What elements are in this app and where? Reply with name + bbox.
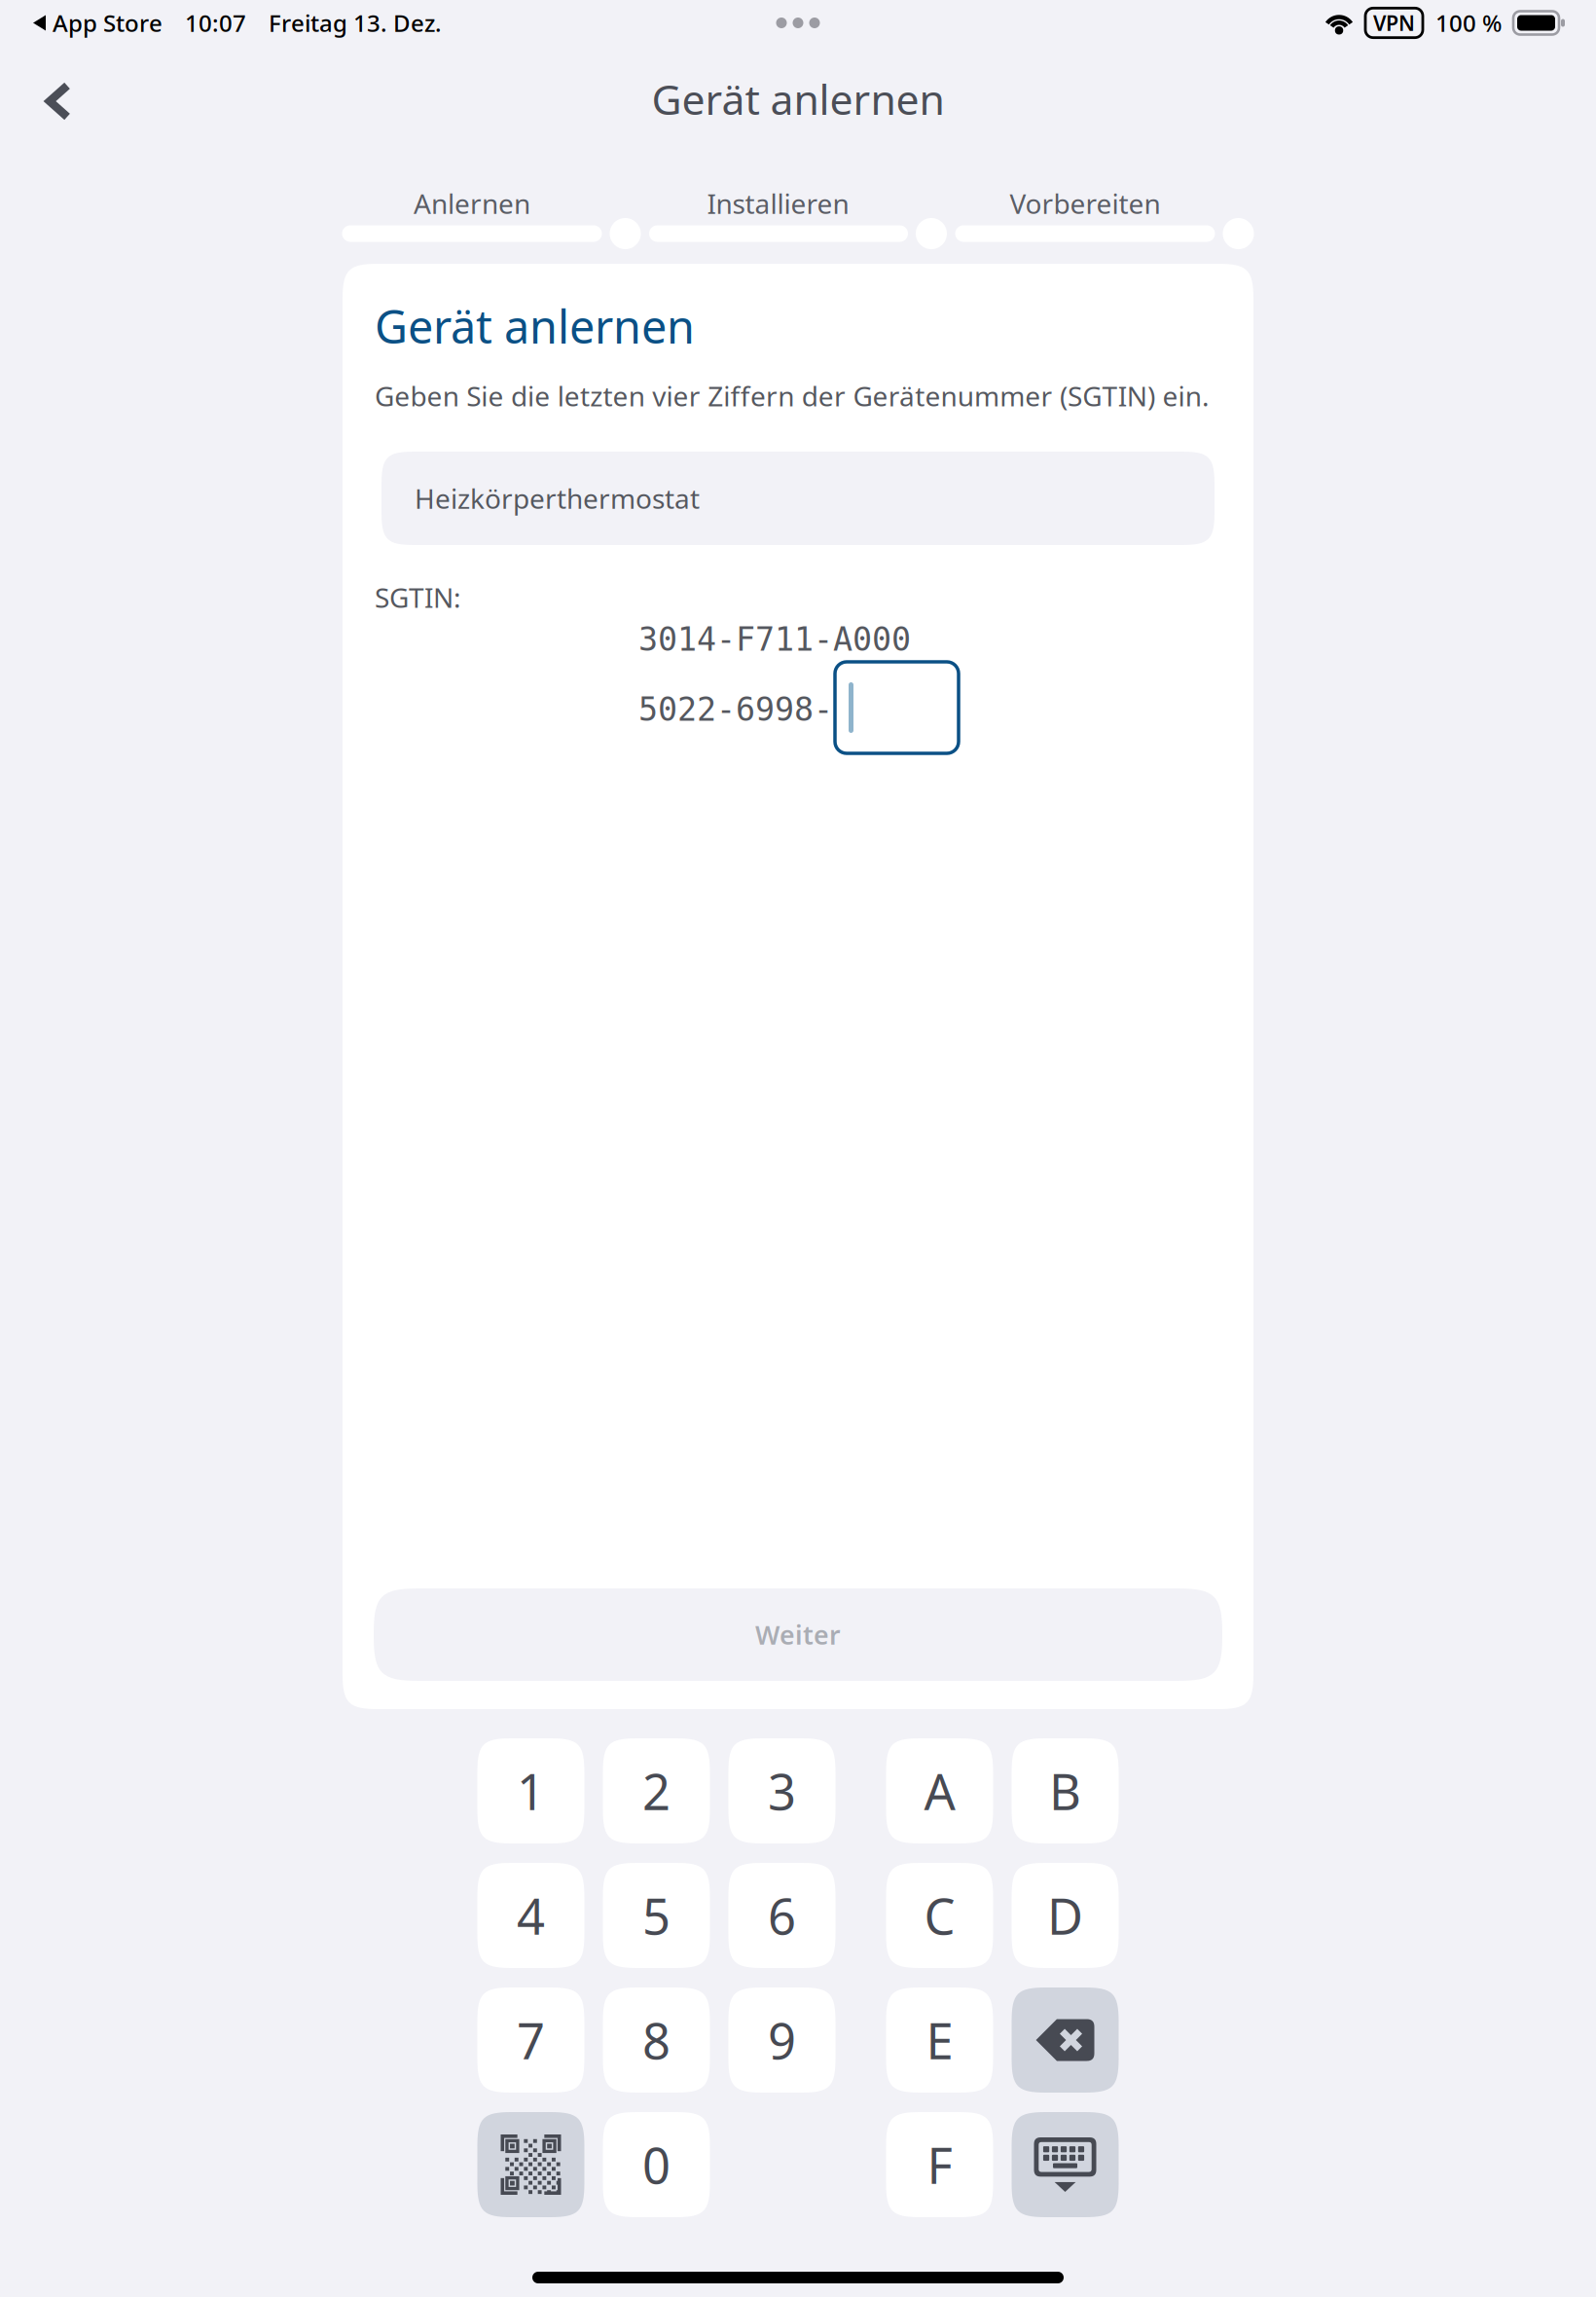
button[interactable]: F <box>886 2112 993 2217</box>
staticText: 2 <box>642 1758 671 1824</box>
staticText: D <box>1047 1883 1083 1948</box>
button[interactable]: A <box>886 1738 993 1843</box>
button[interactable]: Weiter <box>374 1588 1222 1681</box>
button[interactable]: 5 <box>603 1863 710 1968</box>
button[interactable]: 0 <box>603 2112 710 2217</box>
staticText: 9 <box>768 2007 796 2073</box>
staticText: Vorbereiten <box>1010 185 1161 222</box>
staticText: 4 <box>517 1883 545 1948</box>
button[interactable]: 4 <box>477 1863 584 1968</box>
staticText: A <box>924 1758 955 1824</box>
staticText: VPN <box>1373 9 1415 37</box>
staticText: 7 <box>517 2007 545 2073</box>
button[interactable]: Löschen <box>1012 1987 1119 2093</box>
button[interactable]: 2 <box>603 1738 710 1843</box>
button[interactable]: C <box>886 1863 993 1968</box>
staticText: 5022-6998- <box>638 691 833 728</box>
button[interactable]: 3 <box>728 1738 835 1843</box>
button[interactable]: QR-Code scannen <box>477 2112 584 2217</box>
button[interactable]: Tastatur ausblenden <box>1012 2112 1119 2217</box>
staticText: 6 <box>768 1883 796 1948</box>
staticText: 8 <box>642 2007 671 2073</box>
button[interactable]: D <box>1012 1863 1119 1968</box>
staticText: 10:07 <box>185 7 246 38</box>
button[interactable]: 7 <box>477 1987 584 2093</box>
staticText: Heizkörperthermostat <box>415 480 700 516</box>
staticText: 5 <box>642 1883 671 1948</box>
staticText: 3 <box>768 1758 796 1824</box>
button[interactable]: E <box>886 1987 993 2093</box>
button[interactable]: 6 <box>728 1863 835 1968</box>
staticText: SGTIN: <box>375 579 461 615</box>
staticText: 1 <box>517 1758 545 1824</box>
button[interactable]: B <box>1012 1738 1119 1843</box>
staticText: Geben Sie die letzten vier Ziffern der G… <box>375 378 1210 414</box>
staticText: 3014-F711-A000 <box>638 621 911 658</box>
staticText: C <box>924 1883 955 1948</box>
button[interactable]: 9 <box>728 1987 835 2093</box>
staticText: Weiter <box>755 1617 841 1652</box>
staticText: F <box>927 2132 952 2197</box>
staticText: B <box>1049 1758 1081 1824</box>
staticText: Gerät anlernen <box>652 71 944 126</box>
button[interactable]: 8 <box>603 1987 710 2093</box>
button[interactable]: Zurück <box>0 58 102 144</box>
staticText: Freitag 13. Dez. <box>269 7 442 38</box>
staticText: E <box>926 2007 953 2073</box>
staticText: 100 % <box>1435 7 1502 38</box>
staticText: Installieren <box>707 185 849 222</box>
staticText: Anlernen <box>414 185 530 222</box>
staticText: App Store <box>53 7 163 38</box>
button[interactable]: 1 <box>477 1738 584 1843</box>
staticText: Gerät anlernen <box>375 296 695 356</box>
staticText: 0 <box>642 2132 671 2197</box>
